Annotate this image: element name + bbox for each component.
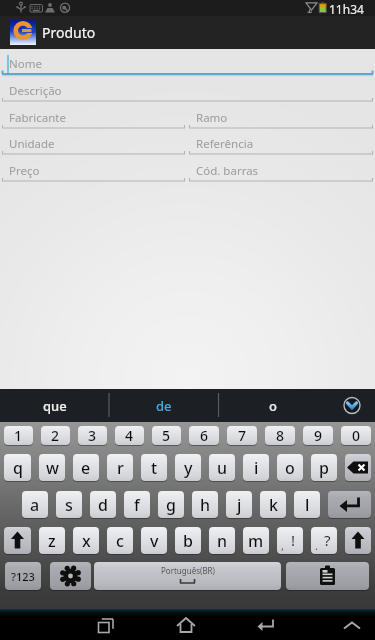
button[interactable]: e: [69, 454, 103, 481]
staticText: g: [166, 494, 176, 516]
staticText: r: [117, 457, 124, 479]
staticText: h: [200, 494, 211, 516]
button[interactable]: .: [307, 527, 341, 554]
button[interactable]: w: [35, 454, 69, 481]
staticText: b: [183, 530, 193, 552]
staticText: o: [269, 397, 277, 415]
button[interactable]: l: [290, 491, 324, 518]
staticText: l: [305, 494, 310, 516]
staticText: 7: [238, 426, 247, 445]
button[interactable]: n: [205, 527, 239, 554]
button[interactable]: 4: [111, 426, 148, 445]
staticText: u: [217, 457, 228, 479]
staticText: 4: [125, 426, 134, 445]
staticText: z: [48, 530, 56, 552]
button[interactable]: r: [103, 454, 137, 481]
button[interactable]: Back: [244, 609, 288, 640]
button[interactable]: de: [109, 389, 218, 422]
button[interactable]: g: [154, 491, 188, 518]
staticText: o: [285, 457, 295, 479]
staticText: 3: [88, 426, 97, 445]
button[interactable]: Shift: [0, 527, 35, 554]
button[interactable]: h: [188, 491, 222, 518]
staticText: e: [81, 457, 91, 479]
staticText: .: [315, 538, 318, 553]
button[interactable]: f: [120, 491, 154, 518]
button[interactable]: q: [0, 454, 35, 481]
button[interactable]: 0: [337, 426, 375, 445]
staticText: j: [237, 494, 242, 516]
button[interactable]: k: [256, 491, 290, 518]
staticText: Nome: [9, 56, 42, 72]
staticText: Referência: [196, 136, 254, 152]
button[interactable]: Backspace: [341, 454, 375, 481]
button[interactable]: Clipboard: [286, 562, 369, 590]
button[interactable]: Show menu: [330, 609, 374, 640]
staticText: ,: [281, 538, 284, 553]
button[interactable]: v: [137, 527, 171, 554]
button[interactable]: ?123: [5, 562, 41, 590]
button[interactable]: 3: [74, 426, 111, 445]
staticText: 8: [276, 426, 285, 445]
button[interactable]: p: [307, 454, 341, 481]
staticText: Fabricante: [9, 110, 66, 126]
staticText: Produto: [42, 23, 96, 42]
button[interactable]: y: [171, 454, 205, 481]
button[interactable]: Home: [164, 609, 208, 640]
staticText: Descrição: [9, 83, 62, 99]
button[interactable]: 9: [299, 426, 337, 445]
button[interactable]: b: [171, 527, 205, 554]
button[interactable]: Preço: [0, 159, 187, 186]
staticText: Ramo: [196, 110, 228, 126]
button[interactable]: ,: [273, 527, 307, 554]
button[interactable]: Shift: [341, 527, 375, 554]
button[interactable]: o: [273, 454, 307, 481]
button[interactable]: Fabricante: [0, 106, 187, 133]
staticText: p: [319, 457, 329, 479]
button[interactable]: i: [239, 454, 273, 481]
staticText: v: [150, 530, 159, 552]
button[interactable]: z: [35, 527, 69, 554]
staticText: y: [184, 457, 193, 479]
button[interactable]: m: [239, 527, 273, 554]
button[interactable]: Enter: [324, 491, 375, 518]
button[interactable]: d: [86, 491, 120, 518]
staticText: ?123: [11, 569, 35, 584]
button[interactable]: t: [137, 454, 171, 481]
staticText: m: [248, 530, 264, 552]
button[interactable]: j: [222, 491, 256, 518]
button[interactable]: More suggestions: [329, 389, 375, 422]
button[interactable]: c: [103, 527, 137, 554]
staticText: d: [98, 494, 108, 516]
staticText: i: [254, 457, 259, 479]
button[interactable]: Ramo: [187, 106, 375, 133]
button[interactable]: o: [218, 389, 327, 422]
staticText: Português(BR): [161, 565, 215, 576]
button[interactable]: Cód. barras: [187, 159, 375, 186]
button[interactable]: u: [205, 454, 239, 481]
staticText: que: [43, 397, 67, 415]
button[interactable]: Nome: [0, 52, 375, 79]
button[interactable]: 6: [185, 426, 223, 445]
staticText: ?: [324, 530, 331, 550]
button[interactable]: a: [18, 491, 52, 518]
button[interactable]: 2: [37, 426, 74, 445]
button[interactable]: Unidade: [0, 132, 187, 159]
button[interactable]: Keyboard settings: [50, 562, 91, 590]
staticText: f: [134, 494, 140, 516]
button[interactable]: Recent apps: [84, 609, 128, 640]
staticText: s: [65, 494, 73, 516]
button[interactable]: Descrição: [0, 79, 375, 106]
button[interactable]: 8: [261, 426, 299, 445]
button[interactable]: que: [0, 389, 109, 422]
button[interactable]: Referência: [187, 132, 375, 159]
staticText: k: [269, 494, 278, 516]
button[interactable]: Space: [94, 562, 281, 590]
button[interactable]: 5: [148, 426, 185, 445]
button[interactable]: 7: [223, 426, 261, 445]
button[interactable]: 1: [0, 426, 37, 445]
staticText: Preço: [9, 163, 40, 179]
button[interactable]: s: [52, 491, 86, 518]
staticText: 0: [352, 426, 361, 445]
button[interactable]: x: [69, 527, 103, 554]
